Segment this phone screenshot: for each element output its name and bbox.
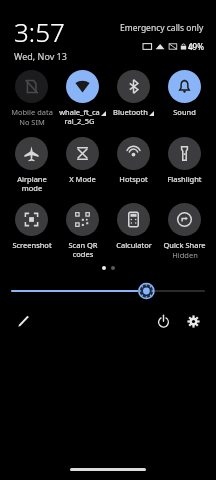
button[interactable]: Calculator (108, 201, 159, 252)
button[interactable]: Hotspot (108, 135, 159, 186)
staticText: Airplane mode (17, 174, 47, 193)
button[interactable]: Mobile data (6, 68, 57, 129)
button[interactable]: Bluetooth (108, 68, 159, 119)
button[interactable]: Flashlight (159, 135, 210, 186)
button[interactable]: whale_ft_ca ral_2_5G (57, 68, 108, 128)
staticText: Wed, Nov 13 (14, 50, 67, 62)
staticText: No SIM (19, 117, 45, 127)
button[interactable]: Power (152, 310, 174, 332)
staticText: Hidden (172, 250, 198, 260)
button[interactable]: Sound (159, 68, 210, 119)
staticText: Flashlight (167, 174, 202, 184)
staticText: Bluetooth (113, 107, 148, 117)
staticText: Screenshot (12, 240, 52, 250)
staticText: whale_ft_ca ral_2_5G (59, 107, 100, 126)
staticText: Scan QR codes (68, 240, 98, 259)
staticText: 49% (188, 41, 204, 52)
button[interactable]: Brightness (12, 280, 204, 302)
staticText: Hotspot (119, 174, 148, 184)
button[interactable]: Screenshot (6, 201, 57, 252)
button[interactable]: Quick Share (159, 201, 210, 262)
button[interactable]: Edit tiles (12, 310, 34, 332)
button[interactable]: X Mode (57, 135, 108, 186)
staticText: Sound (173, 107, 196, 117)
staticText: X Mode (69, 174, 96, 184)
button[interactable]: Settings (182, 310, 204, 332)
staticText: Emergency calls only (120, 22, 204, 34)
staticText: Quick Share (163, 240, 206, 250)
staticText: Calculator (116, 240, 152, 250)
staticText: 3:57 (14, 14, 65, 49)
staticText: Mobile data (11, 107, 53, 117)
button[interactable]: Scan QR codes (57, 201, 108, 261)
button[interactable]: Airplane mode (6, 135, 57, 195)
